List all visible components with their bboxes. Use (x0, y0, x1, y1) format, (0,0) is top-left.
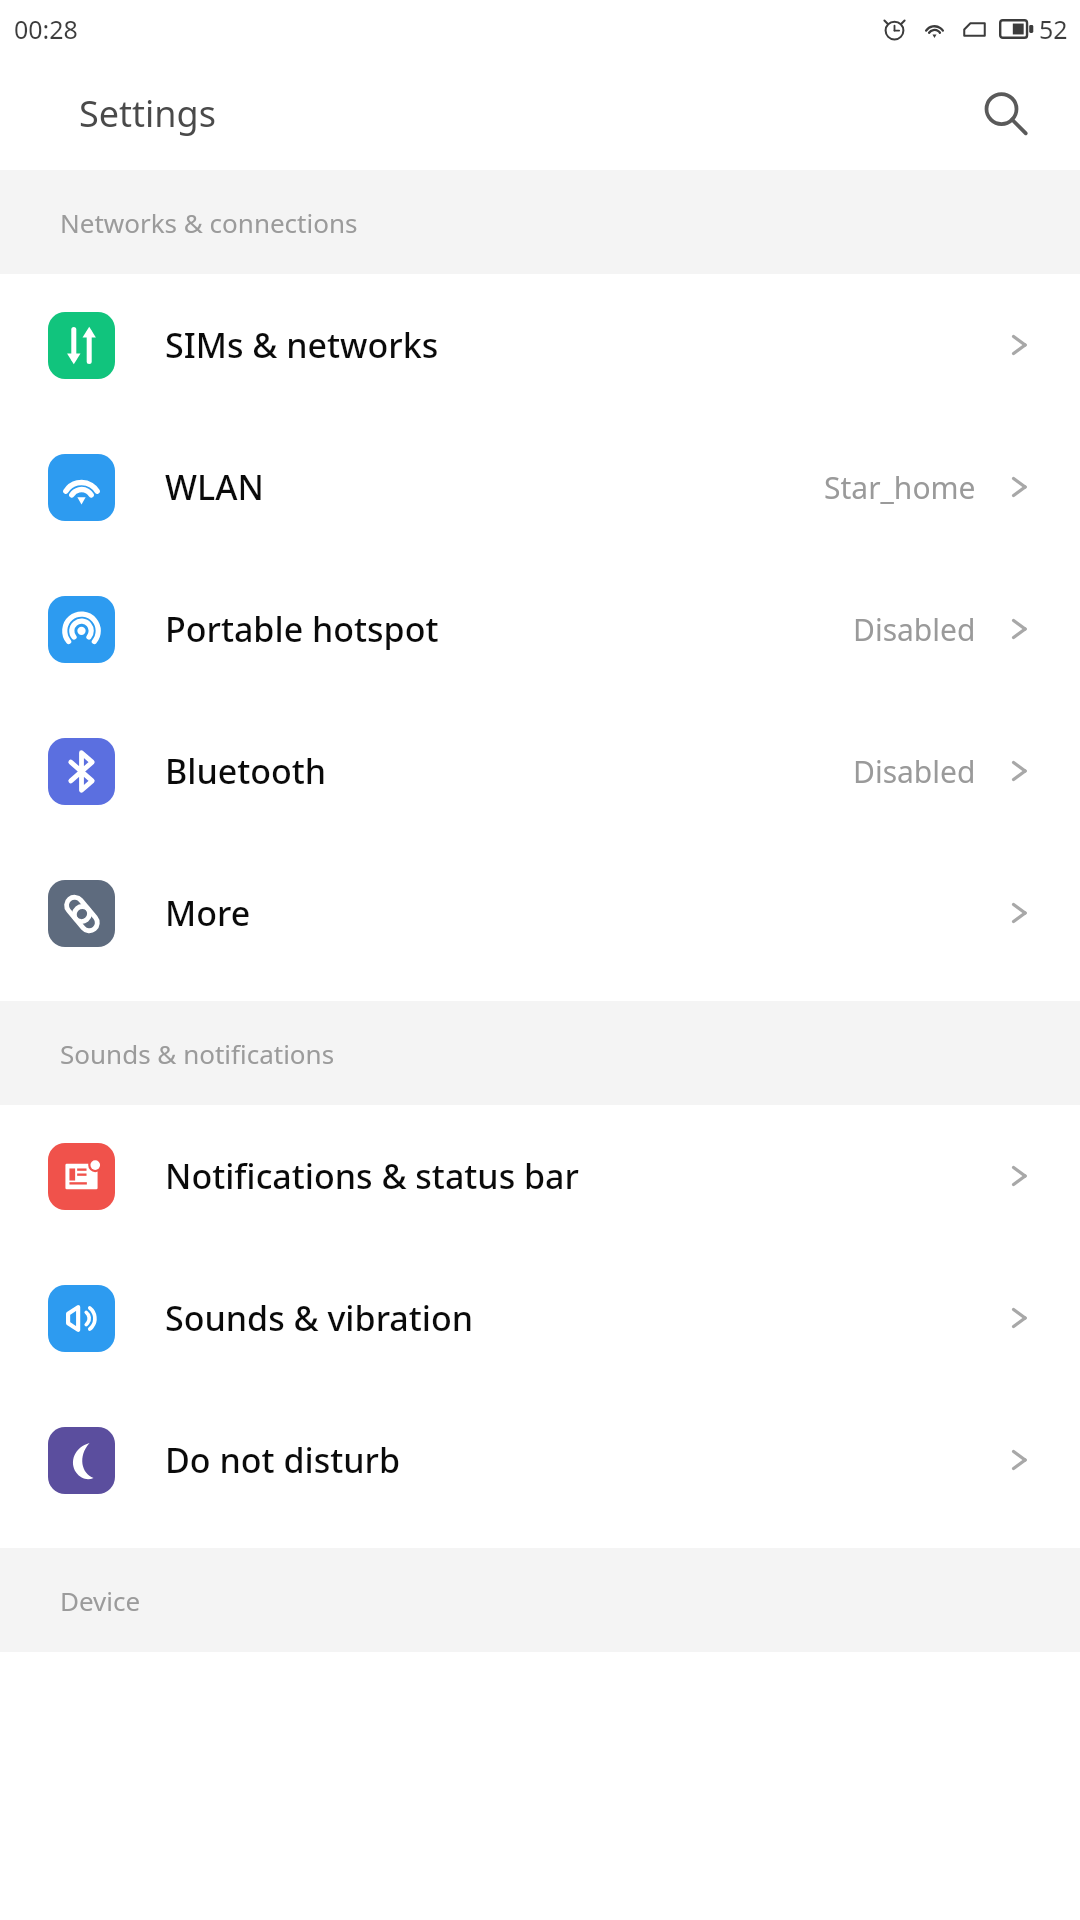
button[interactable]: SIMs & networks (0, 274, 1080, 416)
staticText: WLAN (165, 464, 824, 510)
staticText: 00:28 (14, 12, 78, 46)
staticText: Disabled (853, 609, 976, 650)
staticText: SIMs & networks (165, 322, 1002, 368)
button[interactable]: Sounds & vibration (0, 1247, 1080, 1389)
staticText: Sounds & vibration (165, 1295, 1002, 1341)
staticText: Star_home (824, 467, 976, 508)
button[interactable]: WLAN (0, 416, 1080, 558)
staticText: Portable hotspot (165, 606, 853, 652)
button[interactable]: Notifications & status bar (0, 1105, 1080, 1247)
staticText: Disabled (853, 751, 976, 792)
staticText: More (165, 890, 1002, 936)
staticText: Bluetooth (165, 748, 853, 794)
staticText: 52 (1039, 12, 1068, 46)
staticText: Notifications & status bar (165, 1153, 1002, 1199)
button[interactable]: Do not disturb (0, 1389, 1080, 1531)
button[interactable]: Bluetooth (0, 700, 1080, 842)
button[interactable]: Portable hotspot (0, 558, 1080, 700)
button[interactable]: More (0, 842, 1080, 984)
staticText: Networks & connections (60, 205, 358, 240)
button[interactable]: Search (974, 83, 1036, 145)
staticText: Do not disturb (165, 1437, 1002, 1483)
staticText: Settings (79, 89, 216, 138)
staticText: Sounds & notifications (60, 1036, 335, 1071)
staticText: Device (60, 1583, 141, 1618)
